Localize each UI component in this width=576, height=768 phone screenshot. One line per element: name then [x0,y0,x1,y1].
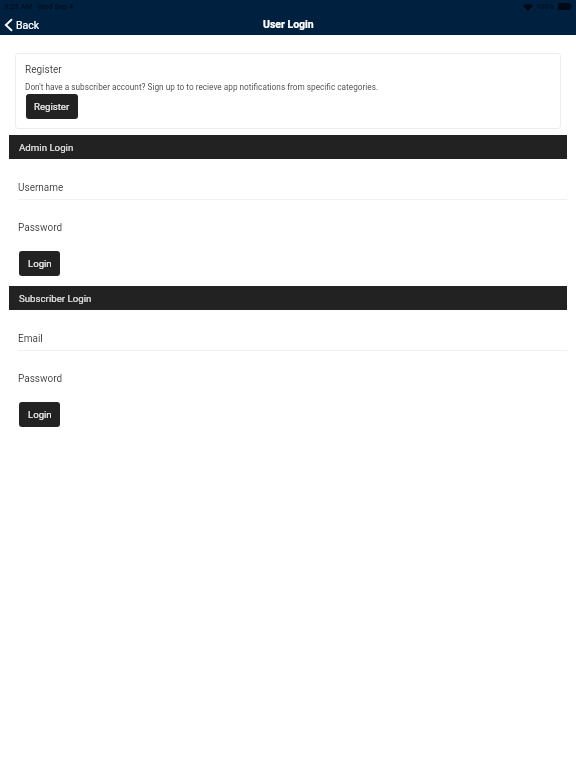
staticText: Username [18,182,64,194]
staticText: Login [28,258,52,269]
staticText: 100% [536,2,555,11]
staticText: Password [18,373,63,385]
staticText: Register [25,64,62,76]
button[interactable]: Email [0,332,576,351]
staticText: Email [18,333,43,345]
staticText: 9:25 AM Wed Sep 4 [4,2,74,11]
staticText: User Login [263,18,314,30]
staticText: Subscriber Login [19,293,92,304]
button[interactable]: Subscriber Login [9,286,567,310]
button[interactable]: Back [0,17,48,33]
button[interactable]: Username [0,181,576,200]
staticText: Password [18,222,63,234]
button[interactable]: Admin Login [9,135,567,159]
staticText: Register [34,101,70,112]
staticText: Don't have a subscriber account? Sign up… [25,82,379,92]
button[interactable]: Password [0,372,576,390]
staticText: Admin Login [19,142,74,153]
button[interactable]: Password [0,221,576,239]
button[interactable]: Login [19,251,60,276]
staticText: Back [16,19,40,31]
other: Back [5,19,12,31]
button[interactable]: Login [19,402,60,427]
button[interactable]: Register [26,94,78,119]
staticText: Login [28,409,52,420]
